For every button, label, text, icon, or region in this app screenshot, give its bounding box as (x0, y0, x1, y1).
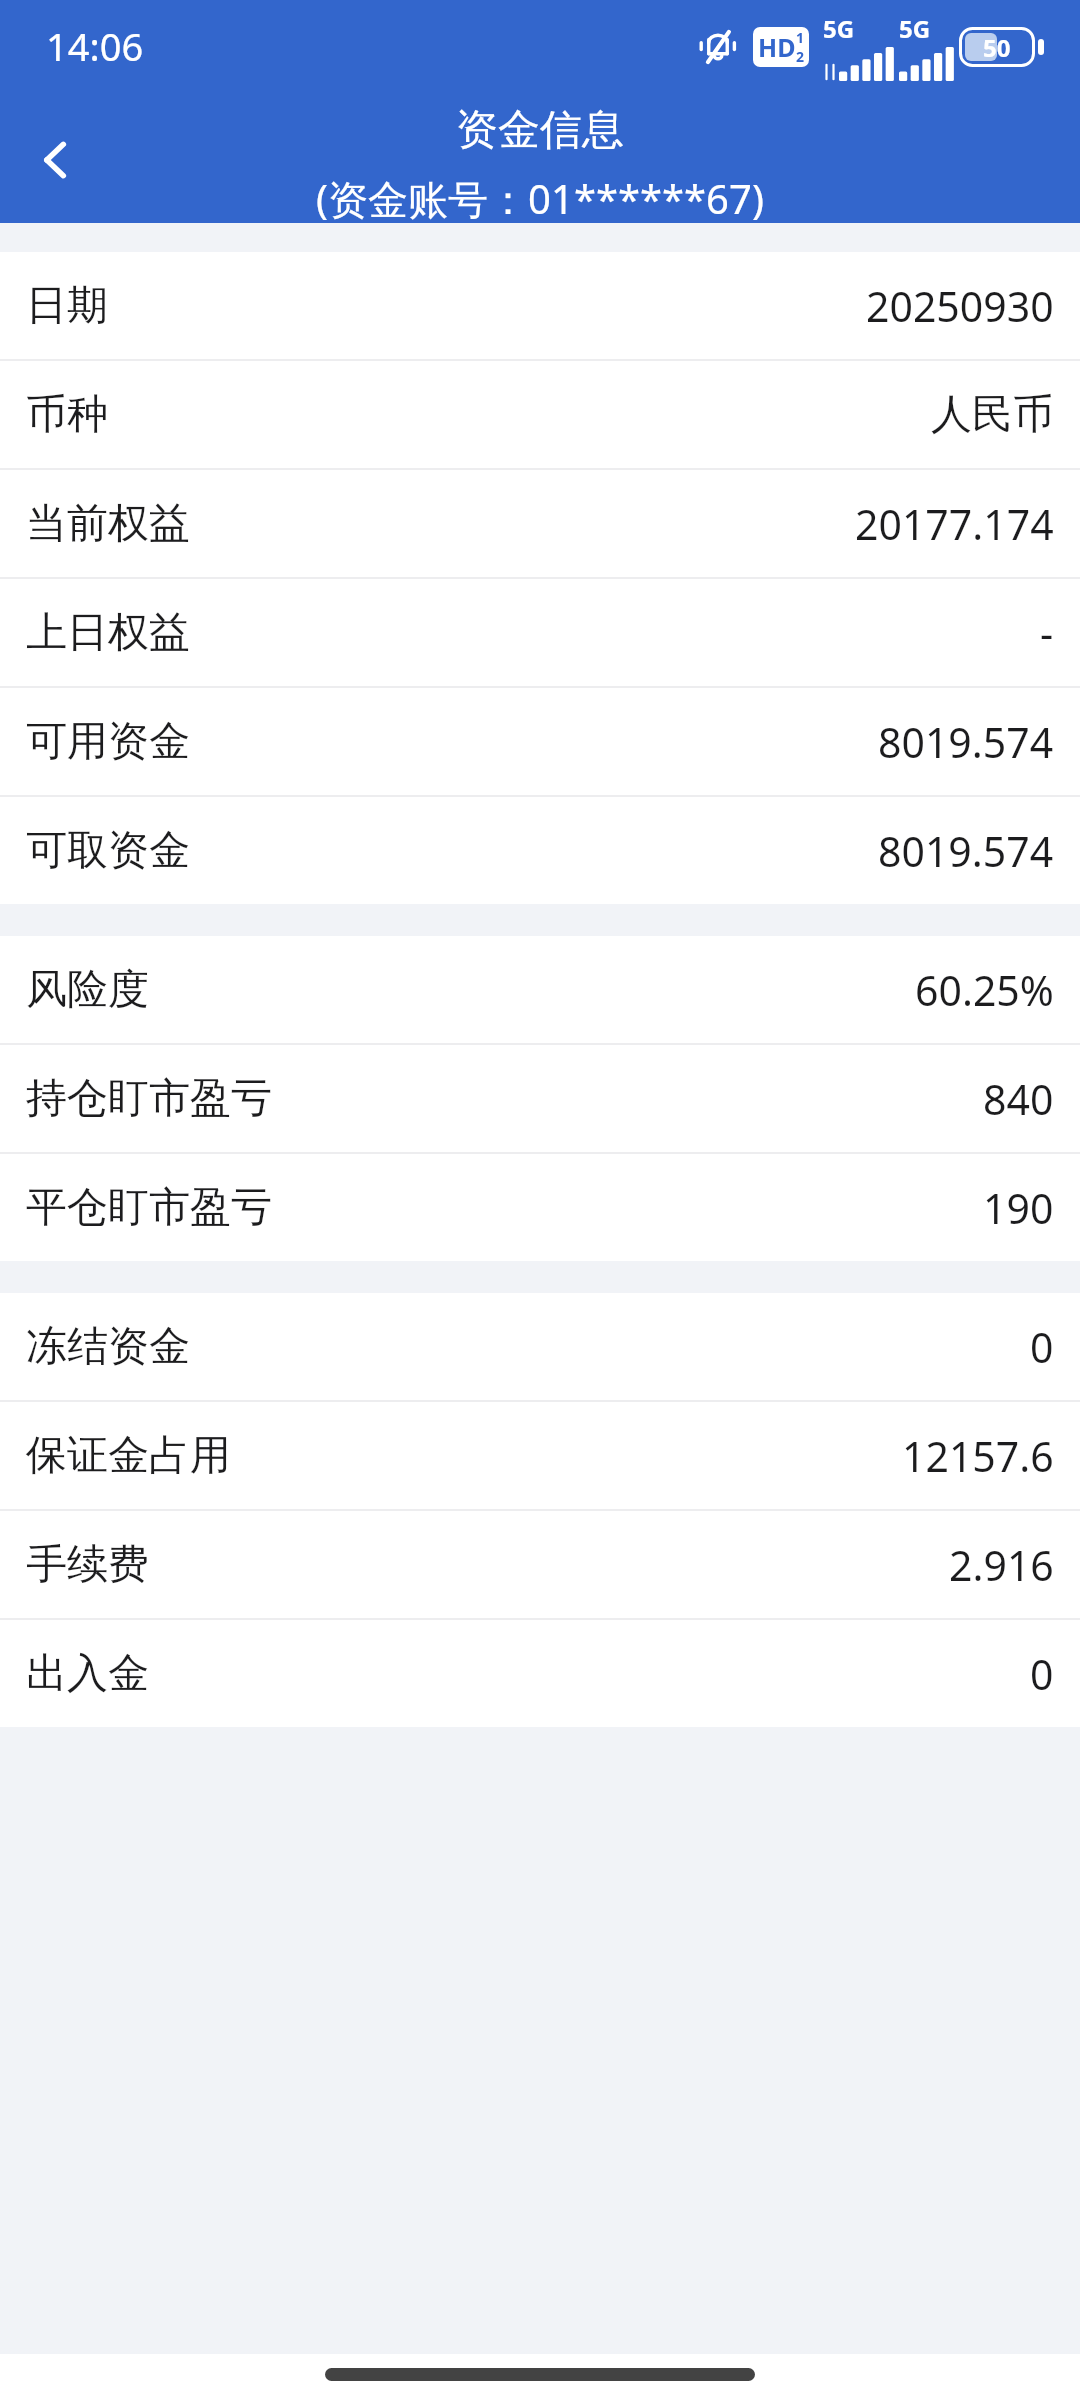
staticText: 5G (899, 12, 931, 45)
staticText: 0 (1030, 1646, 1054, 1702)
button[interactable]: 可取资金 (0, 797, 1080, 904)
button[interactable]: 日期 (0, 252, 1080, 359)
staticText: 190 (983, 1180, 1054, 1236)
staticText: 2 (796, 47, 805, 66)
button[interactable]: 冻结资金 (0, 1293, 1080, 1400)
staticText: 平仓盯市盈亏 (26, 1182, 272, 1234)
button[interactable]: 保证金占用 (0, 1402, 1080, 1509)
staticText: 0 (1030, 1319, 1054, 1375)
staticText: 60.25% (915, 962, 1054, 1018)
staticText: 保证金占用 (26, 1430, 231, 1482)
button[interactable]: 手续费 (0, 1511, 1080, 1618)
staticText: 可用资金 (26, 716, 190, 768)
staticText: 手续费 (26, 1539, 149, 1591)
staticText: 可取资金 (26, 825, 190, 877)
staticText: 持仓盯市盈亏 (26, 1073, 272, 1125)
staticText: 12157.6 (902, 1428, 1054, 1484)
staticText: 8019.574 (878, 714, 1054, 770)
staticText: (资金账号：01******67) (316, 171, 764, 223)
staticText: 人民币 (931, 389, 1054, 441)
button[interactable]: 币种 (0, 361, 1080, 468)
button[interactable]: 当前权益 (0, 470, 1080, 577)
button[interactable]: 上日权益 (0, 579, 1080, 686)
staticText: 50 (983, 31, 1011, 64)
button[interactable]: 出入金 (0, 1620, 1080, 1727)
button[interactable]: 可用资金 (0, 688, 1080, 795)
staticText: 5G (823, 12, 855, 45)
button[interactable]: Back (8, 112, 104, 208)
staticText: 2.916 (949, 1537, 1054, 1593)
staticText: HD (758, 30, 796, 64)
staticText: 冻结资金 (26, 1321, 190, 1373)
staticText: 出入金 (26, 1648, 149, 1700)
staticText: - (1040, 605, 1054, 661)
staticText: 日期 (26, 280, 108, 332)
staticText: 8019.574 (878, 823, 1054, 879)
staticText: 20250930 (866, 278, 1054, 334)
staticText: 当前权益 (26, 498, 190, 550)
staticText: 上日权益 (26, 607, 190, 659)
staticText: 风险度 (26, 964, 149, 1016)
staticText: 14:06 (46, 20, 144, 72)
button[interactable]: 持仓盯市盈亏 (0, 1045, 1080, 1152)
button[interactable]: 平仓盯市盈亏 (0, 1154, 1080, 1261)
button[interactable]: 风险度 (0, 936, 1080, 1043)
staticText: 币种 (26, 389, 108, 441)
staticText: 20177.174 (855, 496, 1054, 552)
staticText: 840 (983, 1071, 1054, 1127)
staticText: 1 (796, 28, 805, 47)
staticText: 资金信息 (456, 104, 624, 157)
